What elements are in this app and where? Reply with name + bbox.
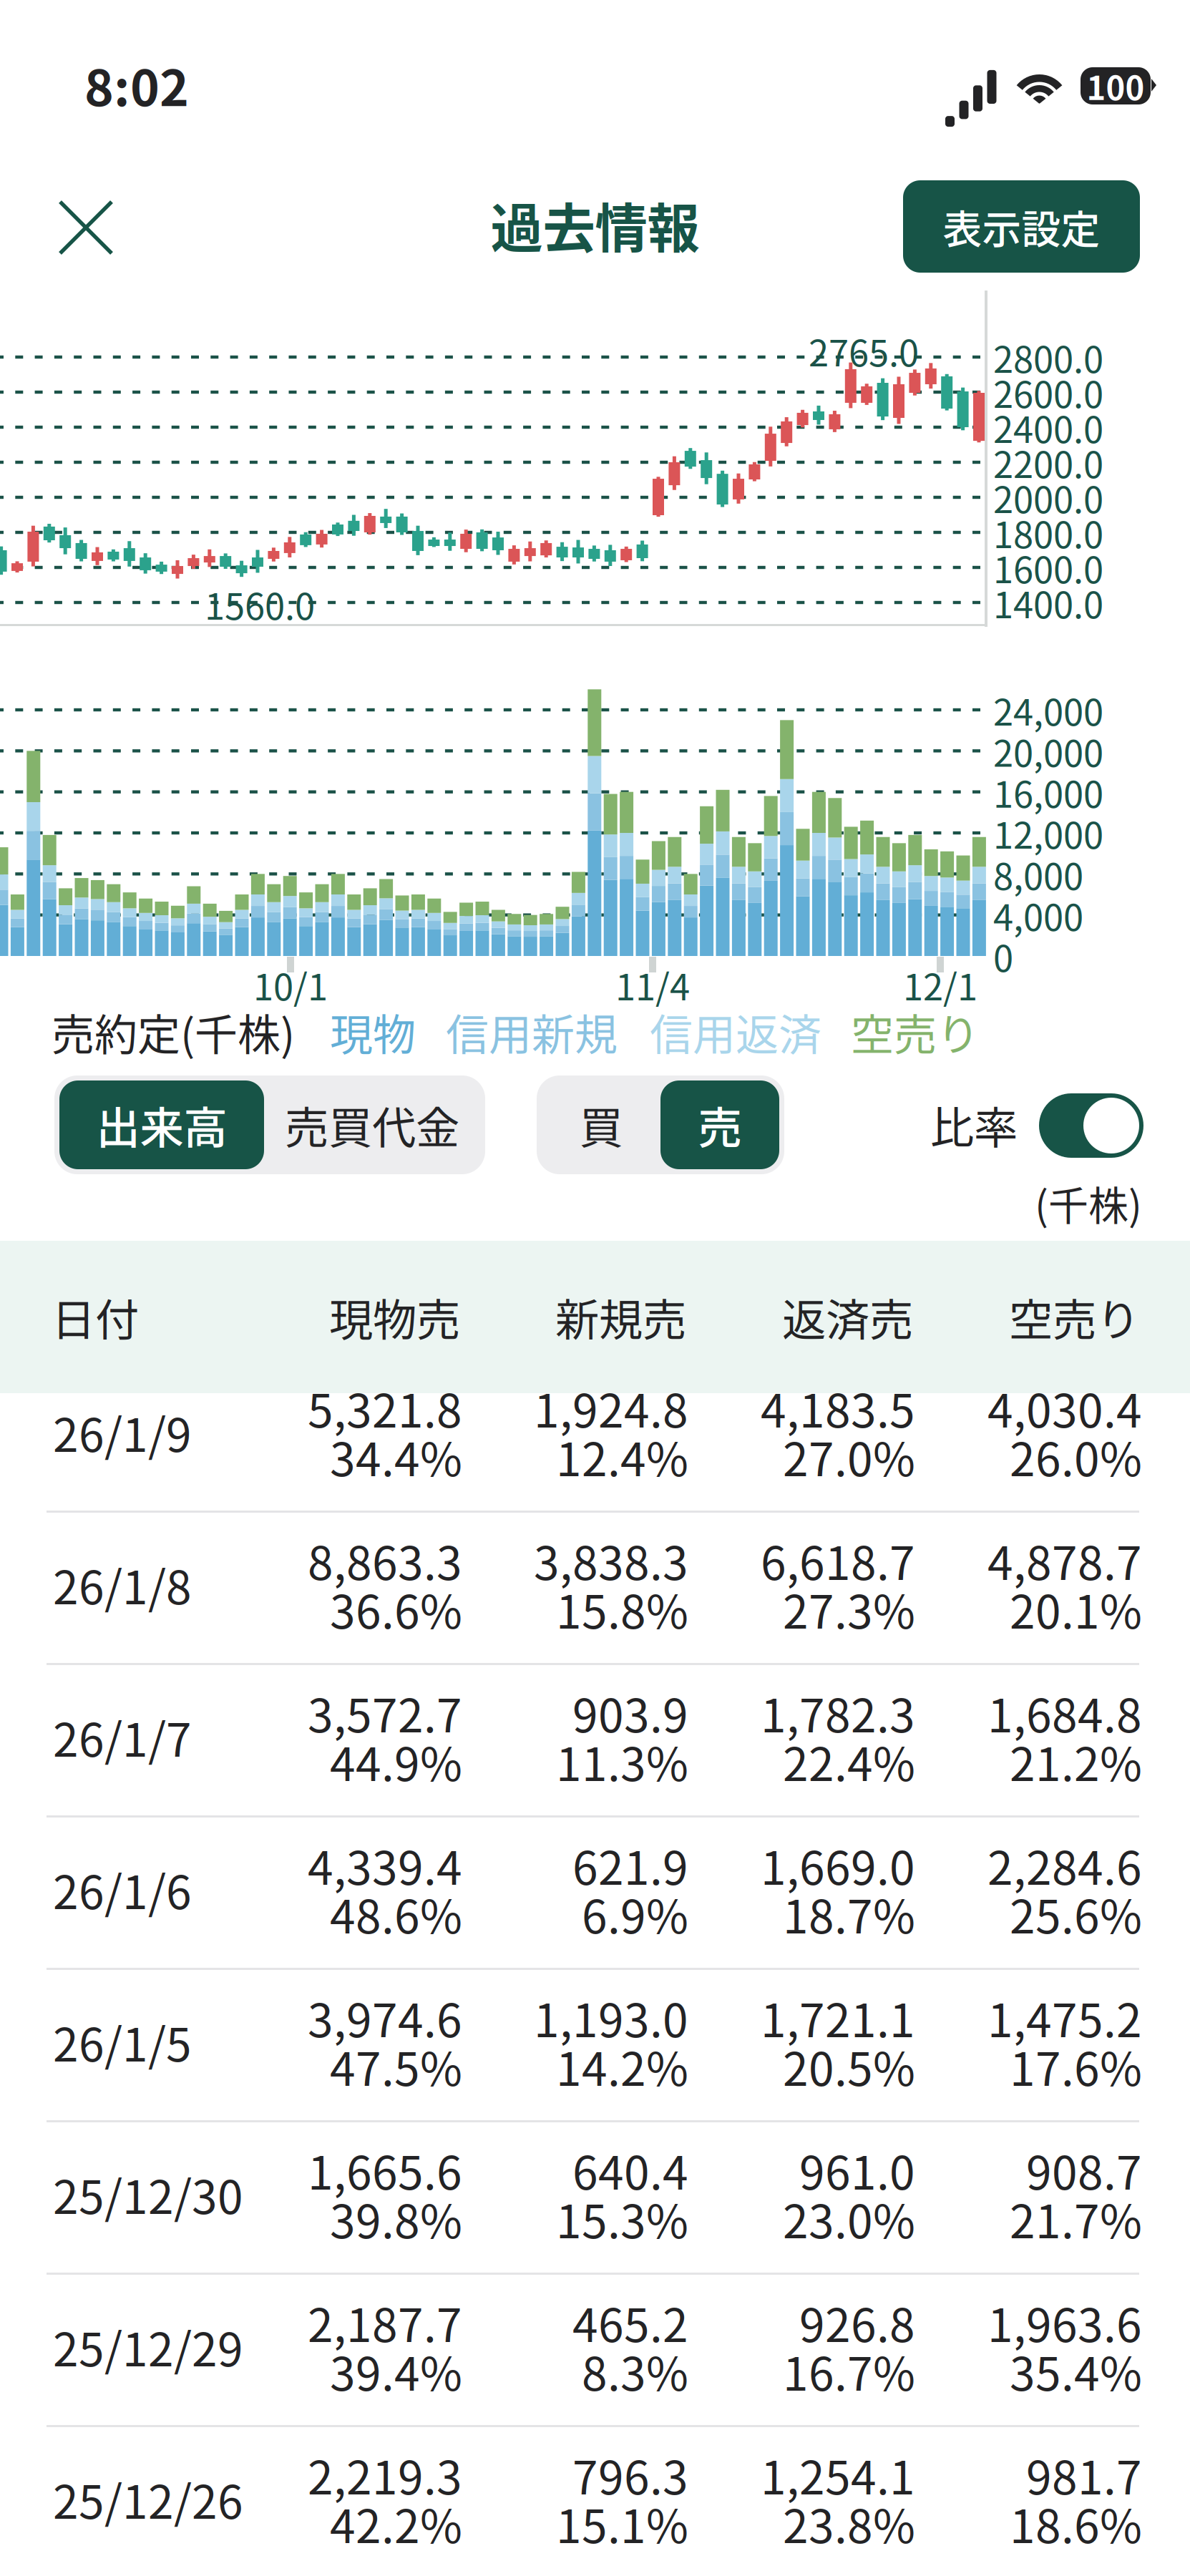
staticText: 現物売 — [329, 1285, 460, 1349]
staticText: 信用新規 — [446, 1001, 618, 1063]
staticText: 2200.0 — [993, 436, 1103, 489]
staticText: 39.4% — [330, 2338, 462, 2404]
staticText: 3,838.3 — [534, 1527, 688, 1593]
staticText: 1600.0 — [993, 541, 1103, 594]
staticText: 34.4% — [330, 1423, 462, 1489]
staticText: 15.8% — [556, 1575, 688, 1642]
staticText: (千株) — [1035, 1174, 1142, 1232]
staticText: 1,254.1 — [761, 2441, 915, 2508]
button[interactable]: 買 — [542, 1080, 660, 1169]
staticText: 空売り — [851, 1001, 980, 1063]
staticText: 47.5% — [330, 2033, 462, 2099]
button[interactable]: 26/1/6 — [0, 1818, 1190, 1970]
staticText: 返済売 — [782, 1285, 913, 1349]
staticText: 36.6% — [330, 1575, 462, 1642]
staticText: 日付 — [52, 1285, 139, 1349]
button[interactable]: 26/1/7 — [0, 1665, 1190, 1818]
staticText: 27.0% — [783, 1423, 915, 1489]
button[interactable]: 出来高 — [59, 1080, 264, 1169]
button[interactable]: 表示設定 — [903, 180, 1140, 273]
staticText: 1,782.3 — [761, 1679, 915, 1746]
staticText: 比率 — [930, 1093, 1018, 1157]
staticText: 現物 — [330, 1001, 416, 1063]
button[interactable]: 閉じる — [30, 172, 142, 283]
button[interactable]: 26/1/9 — [0, 1393, 1190, 1513]
staticText: 2,284.6 — [987, 1832, 1142, 1898]
staticText: 1,684.8 — [987, 1679, 1142, 1746]
staticText: 2765.0 — [809, 324, 919, 377]
staticText: 売買代金 — [285, 1093, 459, 1157]
staticText: 買 — [579, 1093, 623, 1157]
staticText: 8.3% — [582, 2338, 688, 2404]
staticText: 4,878.7 — [987, 1527, 1142, 1593]
staticText: 23.8% — [783, 2490, 915, 2556]
staticText: 100 — [1087, 62, 1145, 109]
staticText: 1,924.8 — [534, 1374, 688, 1441]
staticText: 16.7% — [783, 2338, 915, 2404]
button[interactable]: 売 — [660, 1080, 779, 1169]
staticText: 12/1 — [903, 958, 977, 1011]
staticText: 908.7 — [1026, 2136, 1142, 2203]
staticText: 621.9 — [572, 1832, 688, 1898]
staticText: 23.0% — [783, 2185, 915, 2251]
button[interactable]: 25/12/30 — [0, 2122, 1190, 2275]
staticText: 18.6% — [1010, 2490, 1142, 2556]
staticText: 2600.0 — [993, 366, 1103, 418]
staticText: 3,572.7 — [308, 1679, 462, 1746]
staticText: 2,219.3 — [308, 2441, 462, 2508]
staticText: 1,475.2 — [987, 1984, 1142, 2050]
button[interactable]: 25/12/26 — [0, 2427, 1190, 2576]
button[interactable]: 26/1/8 — [0, 1513, 1190, 1665]
staticText: 1400.0 — [993, 576, 1103, 629]
staticText: 4,183.5 — [761, 1374, 915, 1441]
staticText: 2000.0 — [993, 471, 1103, 524]
button[interactable]: 26/1/5 — [0, 1970, 1190, 2122]
staticText: 5,321.8 — [308, 1374, 462, 1441]
staticText: 空売り — [1009, 1285, 1140, 1349]
staticText: 10/1 — [253, 958, 328, 1011]
staticText: 0 — [993, 930, 1013, 982]
staticText: 8:02 — [84, 49, 189, 120]
staticText: 926.8 — [799, 2289, 915, 2355]
staticText: 26/1/8 — [53, 1551, 192, 1617]
staticText: 17.6% — [1010, 2033, 1142, 2099]
staticText: 15.1% — [556, 2490, 688, 2556]
staticText: 20,000 — [993, 725, 1103, 777]
staticText: 6.9% — [582, 1880, 688, 1947]
staticText: 売約定(千株) — [52, 1001, 295, 1063]
staticText: 4,030.4 — [987, 1374, 1142, 1441]
button[interactable]: 比率 — [1039, 1093, 1146, 1159]
staticText: 26/1/6 — [53, 1856, 192, 1922]
staticText: 25.6% — [1010, 1880, 1142, 1947]
staticText: 1,963.6 — [987, 2289, 1142, 2355]
staticText: 表示設定 — [943, 198, 1100, 255]
staticText: 961.0 — [799, 2136, 915, 2203]
staticText: 新規売 — [555, 1285, 686, 1349]
staticText: 2800.0 — [993, 331, 1103, 383]
staticText: 981.7 — [1026, 2441, 1142, 2508]
staticText: 465.2 — [572, 2289, 688, 2355]
staticText: 24,000 — [993, 684, 1103, 736]
staticText: 12,000 — [993, 807, 1103, 859]
staticText: 11.3% — [556, 1728, 688, 1794]
staticText: 640.4 — [572, 2136, 688, 2203]
staticText: 4,000 — [993, 889, 1083, 941]
staticText: 2,187.7 — [308, 2289, 462, 2355]
button[interactable]: 売買代金 — [264, 1080, 480, 1169]
staticText: 信用返済 — [650, 1001, 821, 1063]
staticText: 1800.0 — [993, 506, 1103, 559]
staticText: 39.8% — [330, 2185, 462, 2251]
staticText: 1,721.1 — [761, 1984, 915, 2050]
button[interactable]: 25/12/29 — [0, 2275, 1190, 2427]
staticText: 1560.0 — [205, 578, 315, 630]
staticText: 26/1/5 — [53, 2008, 192, 2075]
staticText: 12.4% — [556, 1423, 688, 1489]
staticText: 796.3 — [572, 2441, 688, 2508]
staticText: 48.6% — [330, 1880, 462, 1947]
staticText: 903.9 — [572, 1679, 688, 1746]
staticText: 42.2% — [330, 2490, 462, 2556]
staticText: 売 — [698, 1093, 742, 1157]
staticText: 25/12/26 — [53, 2466, 243, 2532]
staticText: 1,669.0 — [761, 1832, 915, 1898]
staticText: 26/1/9 — [53, 1399, 192, 1465]
